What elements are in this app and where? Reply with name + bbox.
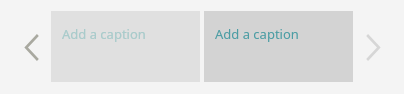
staticText: Add a caption — [215, 25, 299, 43]
button[interactable]: Next — [355, 29, 391, 65]
button[interactable]: Add a caption — [51, 11, 200, 82]
button[interactable]: Previous — [14, 29, 50, 65]
button[interactable]: Add a caption — [204, 11, 353, 82]
staticText: Add a caption — [62, 25, 146, 43]
